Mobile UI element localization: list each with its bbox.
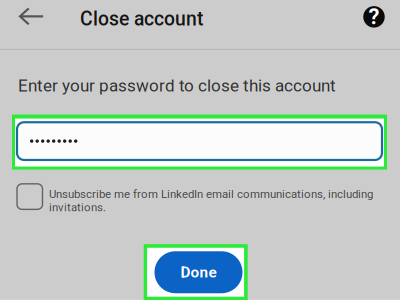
- staticText: Unsubscribe me from LinkedIn email commu…: [49, 187, 373, 214]
- button[interactable]: Done: [144, 244, 248, 300]
- staticText: Close account: [80, 7, 203, 30]
- button[interactable]: Unsubscribe me from LinkedIn email commu…: [17, 184, 379, 211]
- staticText: Done: [180, 263, 216, 281]
- button[interactable]: Help: [353, 0, 395, 33]
- staticText: ?: [368, 4, 379, 30]
- button[interactable]: Back: [10, 0, 52, 33]
- staticText: Enter your password to close this accoun…: [18, 76, 336, 96]
